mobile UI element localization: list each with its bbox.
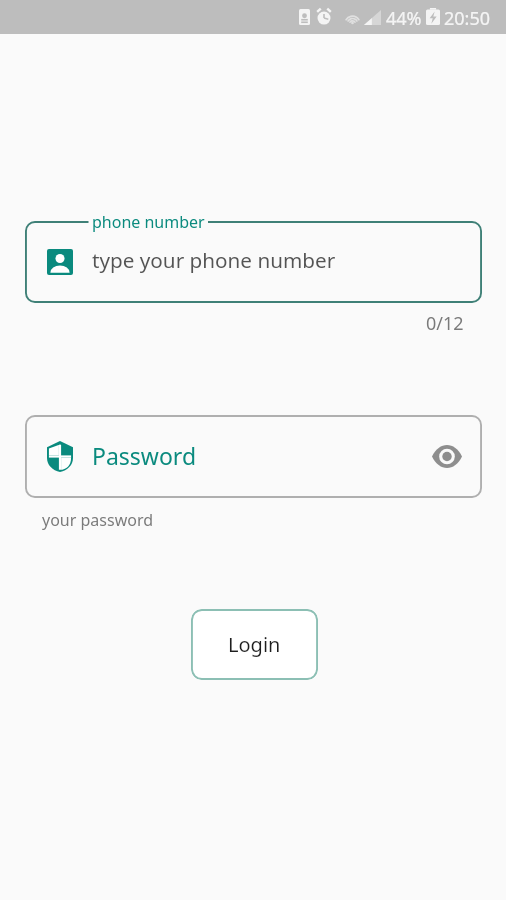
button[interactable]: Show password <box>427 436 467 476</box>
button[interactable]: Login <box>191 609 318 680</box>
staticText: Login <box>228 631 281 658</box>
button[interactable]: type your phone number <box>25 221 482 303</box>
staticText: phone number <box>92 211 205 233</box>
staticText: 0/12 <box>426 311 464 336</box>
staticText: type your phone number <box>92 246 336 274</box>
staticText: Password <box>92 440 197 471</box>
staticText: your password <box>42 509 154 531</box>
staticText: 20:50 <box>444 6 491 31</box>
button[interactable]: Password <box>25 415 482 498</box>
staticText: 44% <box>386 6 422 31</box>
